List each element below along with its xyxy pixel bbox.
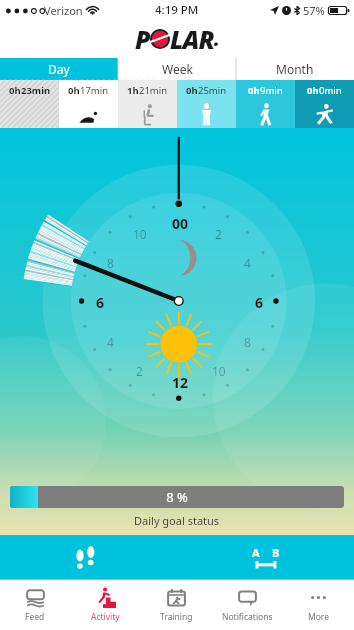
staticText: 4 <box>244 255 251 271</box>
staticText: 1h <box>127 84 139 97</box>
button[interactable]: 1h <box>118 80 177 128</box>
button[interactable]: Steps <box>0 535 177 580</box>
staticText: 00 <box>172 214 189 233</box>
staticText: 57% <box>303 3 325 18</box>
staticText: 6 <box>96 293 105 312</box>
button[interactable]: 0h <box>236 80 295 128</box>
button[interactable]: Notifications <box>212 580 283 630</box>
staticText: 4 <box>107 334 114 350</box>
staticText: 23min <box>21 84 51 97</box>
staticText: 0h <box>307 84 319 97</box>
staticText: More <box>308 611 329 623</box>
button[interactable]: Distance <box>177 535 354 580</box>
staticText: 0h <box>186 84 198 97</box>
staticText: 25min <box>198 84 227 97</box>
staticText: Training <box>160 611 193 623</box>
staticText: Feed <box>25 611 45 623</box>
staticText: LAR <box>170 22 214 56</box>
button[interactable]: 0h <box>0 80 59 128</box>
staticText: 21min <box>139 84 168 97</box>
button[interactable]: Feed <box>0 580 70 630</box>
staticText: Daily goal status <box>134 513 220 528</box>
staticText: Verizon <box>44 3 83 18</box>
staticText: 0min <box>319 84 342 97</box>
staticText: 0h <box>248 84 260 97</box>
button[interactable]: 0h <box>59 80 118 128</box>
button[interactable]: Day <box>0 58 118 80</box>
button[interactable]: Month <box>236 58 354 80</box>
button[interactable]: 0h <box>295 80 354 128</box>
staticText: . <box>214 26 220 52</box>
staticText: 8 % <box>10 488 344 506</box>
button[interactable]: Training <box>141 580 212 630</box>
button[interactable]: 0h <box>177 80 236 128</box>
staticText: Week <box>162 61 193 77</box>
staticText: 9min <box>260 84 283 97</box>
staticText: Month <box>276 61 314 77</box>
staticText: 2 <box>215 226 222 242</box>
staticText: 8 <box>244 334 251 350</box>
staticText: 4:19 PM <box>155 2 199 18</box>
staticText: Day <box>48 61 70 77</box>
staticText: A <box>252 545 260 560</box>
button[interactable]: Activity <box>70 580 141 630</box>
staticText: 10 <box>212 363 226 379</box>
staticText: P <box>135 22 150 56</box>
button[interactable]: More <box>283 580 354 630</box>
staticText: 6 <box>255 293 264 312</box>
staticText: Activity <box>91 611 120 623</box>
staticText: 0h <box>9 84 21 97</box>
staticText: 2 <box>136 363 143 379</box>
staticText: 17min <box>80 84 109 97</box>
staticText: 8 <box>107 255 114 271</box>
staticText: Notifications <box>222 611 273 623</box>
button[interactable]: Week <box>118 58 236 80</box>
staticText: 10 <box>133 226 147 242</box>
staticText: 0h <box>68 84 80 97</box>
button[interactable]: 8 % <box>10 486 344 508</box>
staticText: 12 <box>172 373 189 392</box>
staticText: B <box>272 545 280 560</box>
